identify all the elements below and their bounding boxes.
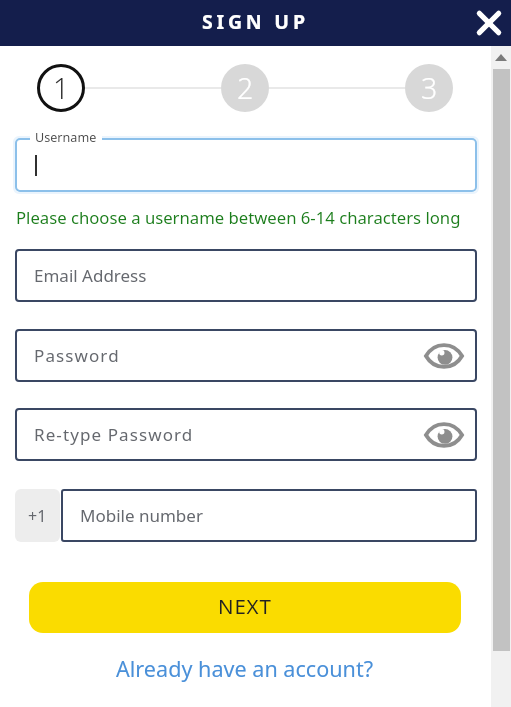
button[interactable]: NEXT (29, 582, 461, 633)
staticText: Username (35, 129, 97, 146)
button[interactable]: Already have an account? (112, 650, 378, 687)
staticText: Password (34, 344, 120, 367)
staticText: 3 (421, 69, 438, 108)
button[interactable]: Mobile number (61, 489, 477, 542)
staticText: Re-type Password (34, 423, 194, 446)
staticText: 2 (237, 69, 254, 108)
button[interactable]: Close (469, 3, 509, 43)
button[interactable]: Password (15, 329, 477, 382)
staticText: Mobile number (80, 504, 203, 527)
button[interactable]: Email Address (15, 249, 477, 302)
staticText: NEXT (218, 592, 272, 620)
button[interactable] (15, 138, 477, 192)
button[interactable]: Re-type Password (15, 408, 477, 461)
button[interactable]: Scroll up (491, 46, 511, 69)
staticText: 1 (53, 69, 70, 108)
staticText: Email Address (34, 264, 147, 287)
button[interactable]: +1 (15, 489, 60, 542)
staticText: Please choose a username between 6-14 ch… (16, 206, 461, 229)
button[interactable]: Show password (422, 334, 466, 378)
staticText: SIGN UP (202, 8, 309, 35)
button[interactable]: Show password (422, 413, 466, 457)
staticText: +1 (28, 505, 47, 527)
